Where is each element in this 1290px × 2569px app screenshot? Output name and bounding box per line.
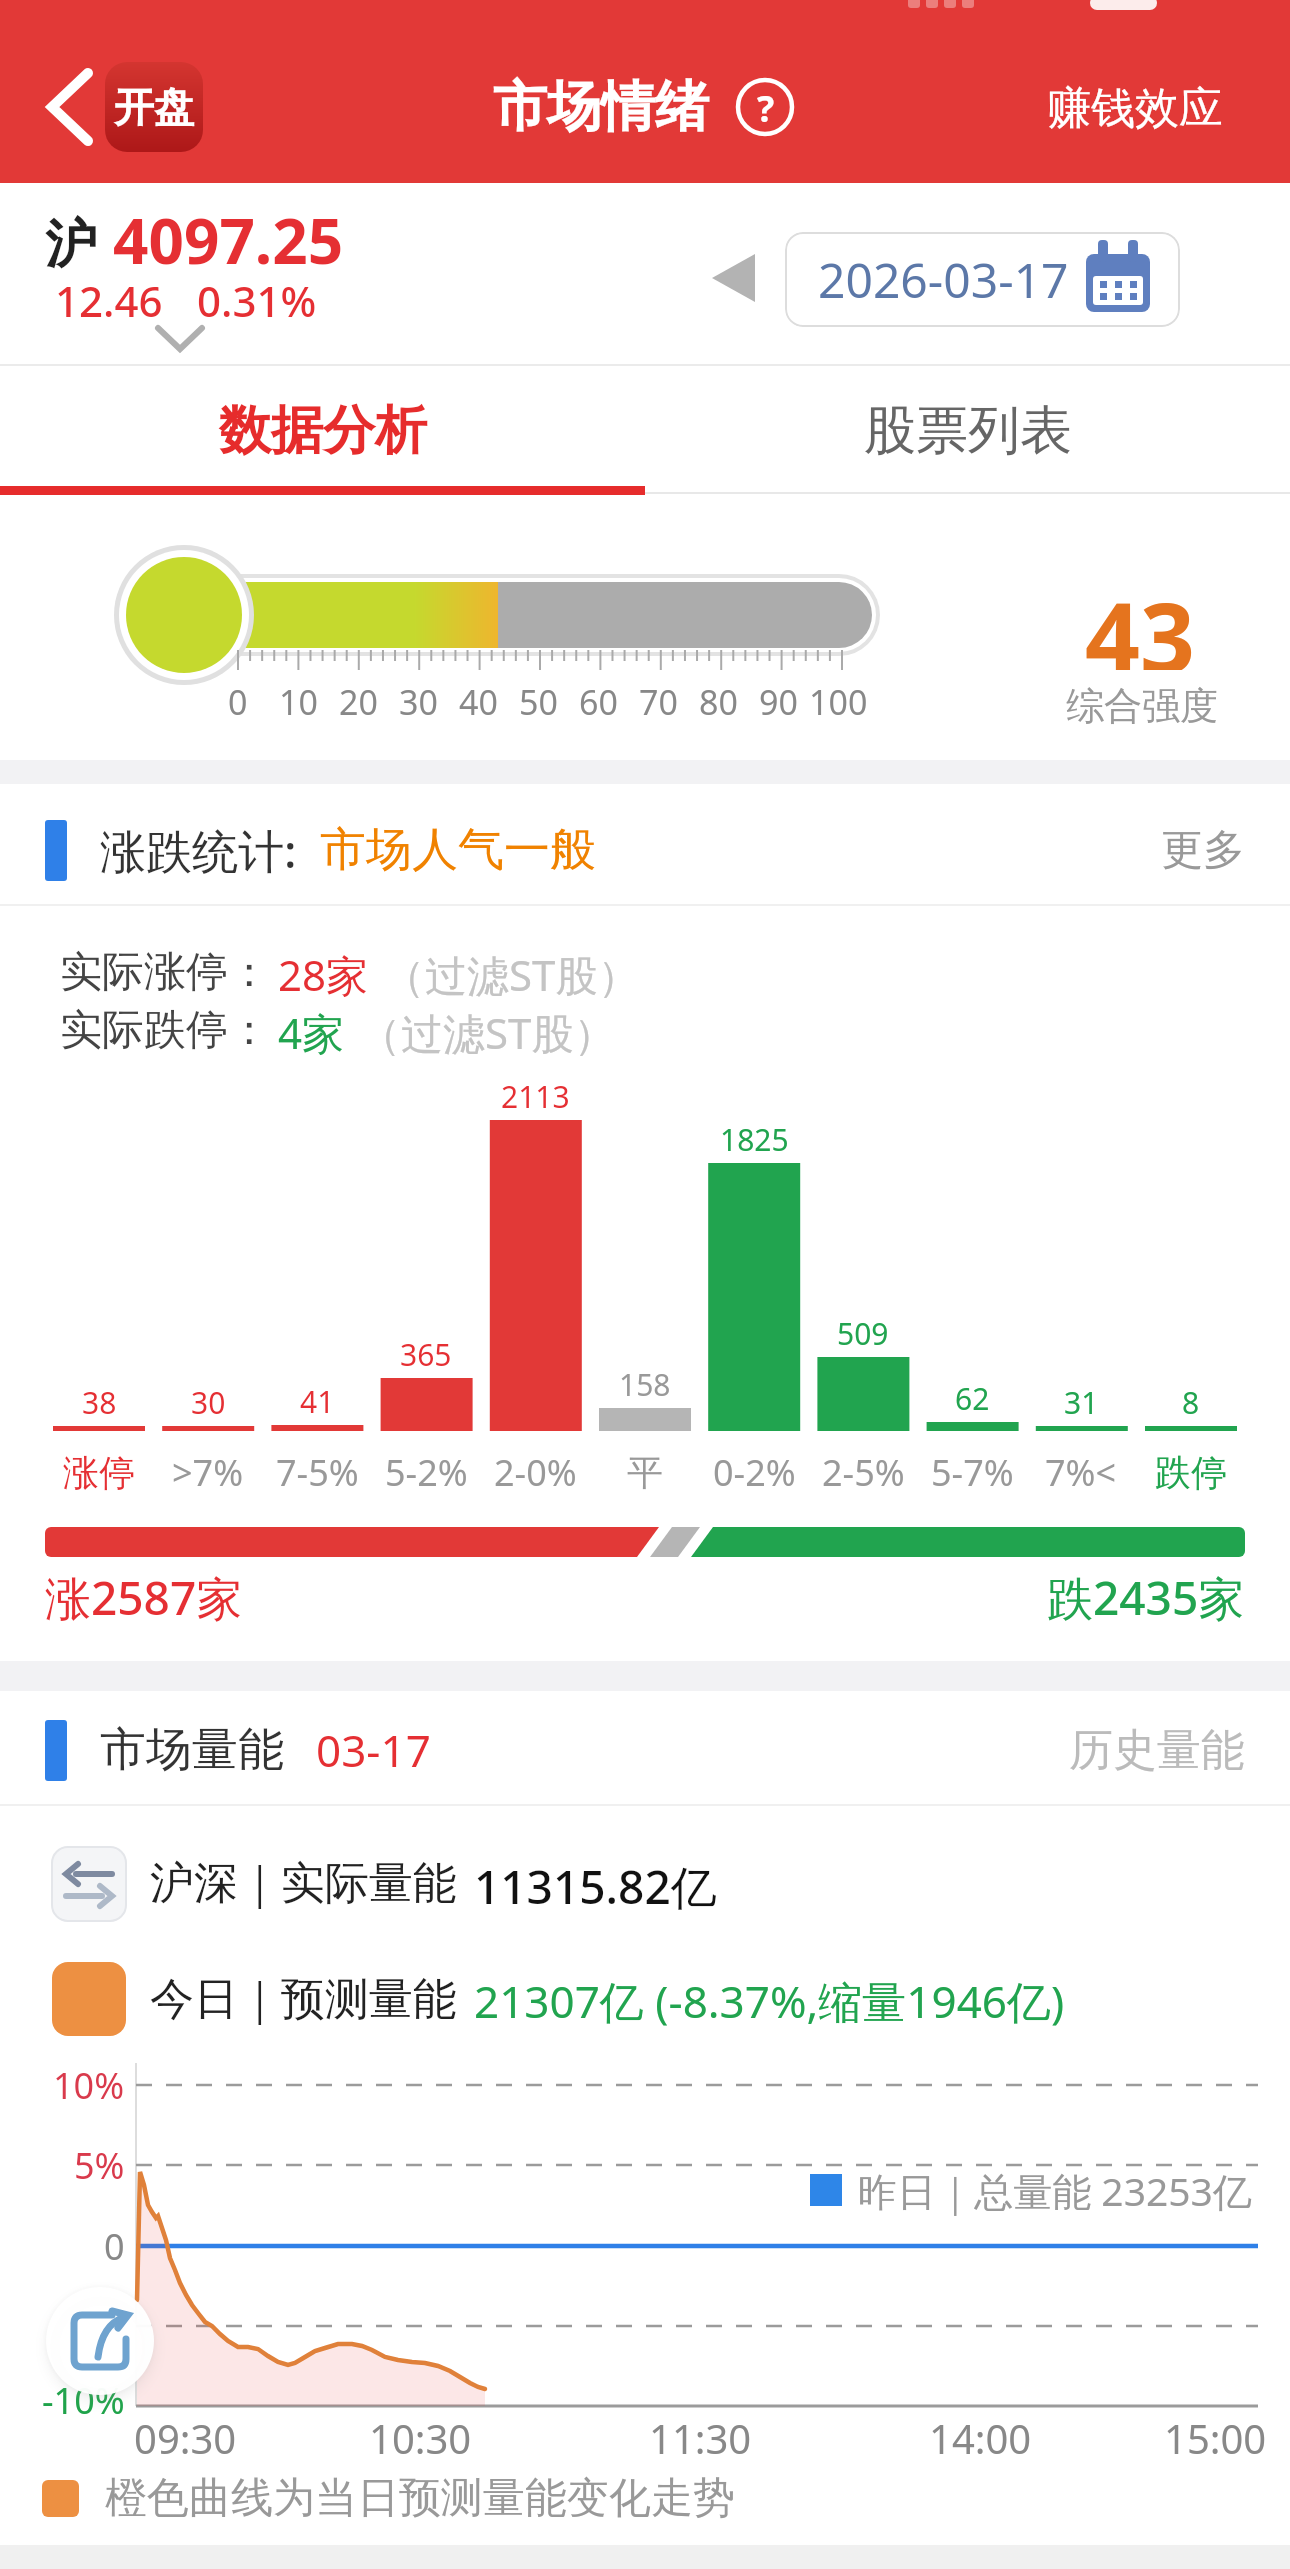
staticText: 综合强度: [1066, 682, 1218, 730]
staticText: 2-0%: [494, 1448, 577, 1497]
staticText: 实际涨停：: [60, 946, 270, 998]
staticText: 2026-03-17: [818, 247, 1069, 312]
button[interactable]: 赚钱效应: [1030, 70, 1240, 146]
staticText: 涨停: [63, 1450, 135, 1495]
staticText: 涨2587家: [45, 1566, 243, 1629]
staticText: 38: [82, 1382, 117, 1423]
button[interactable]: 数据分析: [0, 368, 645, 494]
staticText: 实际跌停：: [60, 1004, 270, 1056]
staticText: 8: [1182, 1382, 1200, 1423]
button[interactable]: 历史量能: [1000, 1710, 1260, 1790]
staticText: 跌2435家: [1047, 1566, 1245, 1629]
staticText: 跌停: [1155, 1450, 1227, 1495]
staticText: （过滤ST股）: [359, 1004, 616, 1056]
staticText: 平: [627, 1450, 663, 1495]
staticText: 2113: [501, 1076, 570, 1117]
staticText: 20: [339, 679, 378, 725]
staticText: -10%: [42, 2376, 125, 2425]
staticText: 2-5%: [822, 1448, 905, 1497]
staticText: 赚钱效应: [1047, 81, 1223, 136]
staticText: 80: [699, 679, 738, 725]
button[interactable]: 开盘: [105, 62, 203, 152]
staticText: 31: [1064, 1382, 1099, 1423]
staticText: 03-17: [316, 1720, 431, 1780]
staticText: 1825: [720, 1119, 789, 1160]
staticText: 市场人气一般: [320, 821, 596, 879]
staticText: 365: [400, 1334, 452, 1375]
staticText: 12.46: [55, 272, 163, 324]
staticText: 股票列表: [864, 398, 1072, 464]
staticText: 21307亿 (-8.37%,缩量1946亿): [474, 1971, 1065, 2027]
staticText: 数据分析: [219, 398, 427, 464]
staticText: 11315.82亿: [474, 1855, 717, 1911]
staticText: 0: [228, 679, 248, 725]
staticText: 11:30: [649, 2411, 752, 2465]
staticText: 昨日｜总量能 23253亿: [858, 2164, 1252, 2217]
staticText: 历史量能: [1069, 1723, 1245, 1778]
staticText: >7%: [172, 1448, 244, 1497]
staticText: 市场情绪: [493, 73, 709, 141]
button[interactable]: [690, 235, 780, 325]
staticText: 30: [399, 679, 438, 725]
staticText: 5-7%: [931, 1448, 1014, 1497]
staticText: 60: [579, 679, 618, 725]
staticText: 7%<: [1045, 1448, 1117, 1497]
staticText: （过滤ST股）: [383, 946, 640, 998]
staticText: 30: [191, 1382, 226, 1423]
staticText: 沪深｜实际量能: [150, 1856, 458, 1911]
button[interactable]: 股票列表: [645, 368, 1290, 494]
staticText: 28家: [278, 946, 369, 998]
staticText: 15:00: [1164, 2411, 1267, 2465]
button[interactable]: ?: [735, 77, 797, 139]
staticText: 10%: [53, 2061, 125, 2110]
button[interactable]: 更多: [1110, 810, 1260, 890]
staticText: 更多: [1161, 824, 1245, 877]
staticText: 62: [955, 1378, 990, 1419]
staticText: 5%: [74, 2141, 125, 2190]
staticText: 509: [837, 1313, 889, 1354]
staticText: 10: [279, 679, 318, 725]
button[interactable]: 2026-03-17: [785, 232, 1180, 327]
staticText: 14:00: [929, 2411, 1032, 2465]
staticText: 100: [809, 679, 868, 725]
staticText: 90: [759, 679, 798, 725]
staticText: 5-2%: [385, 1448, 468, 1497]
button[interactable]: [35, 55, 105, 160]
staticText: 开盘: [114, 82, 194, 132]
staticText: 0.31%: [197, 272, 317, 324]
staticText: 70: [639, 679, 678, 725]
staticText: 43: [1085, 570, 1195, 670]
staticText: 今日｜预测量能: [150, 1972, 458, 2027]
staticText: 0-2%: [713, 1448, 796, 1497]
staticText: 0: [104, 2222, 125, 2271]
staticText: 涨跌统计:: [100, 819, 297, 882]
staticText: 4097.25: [113, 198, 344, 278]
staticText: 4家: [278, 1004, 345, 1056]
staticText: 7-5%: [276, 1448, 359, 1497]
staticText: ?: [757, 84, 775, 133]
staticText: 158: [619, 1364, 671, 1405]
staticText: 沪: [45, 212, 97, 278]
staticText: 橙色曲线为当日预测量能变化走势: [105, 2472, 735, 2525]
staticText: 50: [519, 679, 558, 725]
staticText: 40: [459, 679, 498, 725]
staticText: 09:30: [134, 2411, 237, 2465]
staticText: 10:30: [369, 2411, 472, 2465]
staticText: 41: [300, 1381, 335, 1422]
staticText: 市场量能: [100, 1721, 284, 1779]
button[interactable]: [46, 2287, 154, 2395]
